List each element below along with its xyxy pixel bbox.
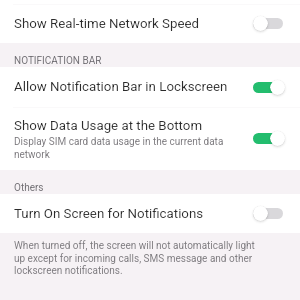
staticText: Display SIM card data usage in the curre…	[14, 136, 239, 160]
staticText: Others	[14, 182, 44, 194]
staticText: Show Data Usage at the Bottom	[14, 118, 203, 134]
staticText: Show Real-time Network Speed	[14, 16, 200, 32]
button[interactable]: Toggle Allow Notification Bar in Lockscr…	[253, 79, 286, 96]
staticText: NOTIFICATION BAR	[14, 55, 102, 67]
staticText: When turned off, the screen will not aut…	[14, 240, 268, 276]
button[interactable]: Show Real-time Network Speed	[0, 4, 300, 43]
staticText: Turn On Screen for Notifications	[14, 206, 204, 222]
button[interactable]: Toggle Turn On Screen for Notifications	[253, 205, 286, 222]
button[interactable]: Show Data Usage at the Bottom	[0, 107, 300, 170]
button[interactable]: Toggle Show Data Usage at the Bottom	[253, 130, 286, 147]
staticText: Allow Notification Bar in Lockscreen	[14, 79, 228, 95]
button[interactable]: Toggle Show Real-time Network Speed	[253, 15, 286, 32]
button[interactable]: Allow Notification Bar in Lockscreen	[0, 67, 300, 107]
button[interactable]: Turn On Screen for Notifications	[0, 194, 300, 233]
